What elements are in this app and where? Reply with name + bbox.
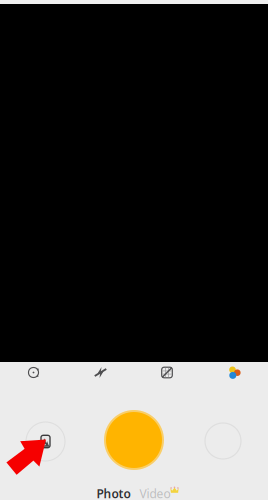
button[interactable]: Take photo [103, 409, 165, 471]
button[interactable]: Grid off [158, 363, 176, 381]
button[interactable]: Photo [89, 482, 137, 500]
button[interactable]: Timer [24, 363, 42, 381]
button[interactable]: Video [132, 482, 177, 500]
button[interactable]: Filters [225, 363, 243, 381]
button[interactable]: Photo library [23, 419, 67, 463]
button[interactable]: Flash off [91, 363, 109, 381]
staticText: Video [139, 485, 170, 500]
staticText: Photo [96, 485, 130, 500]
